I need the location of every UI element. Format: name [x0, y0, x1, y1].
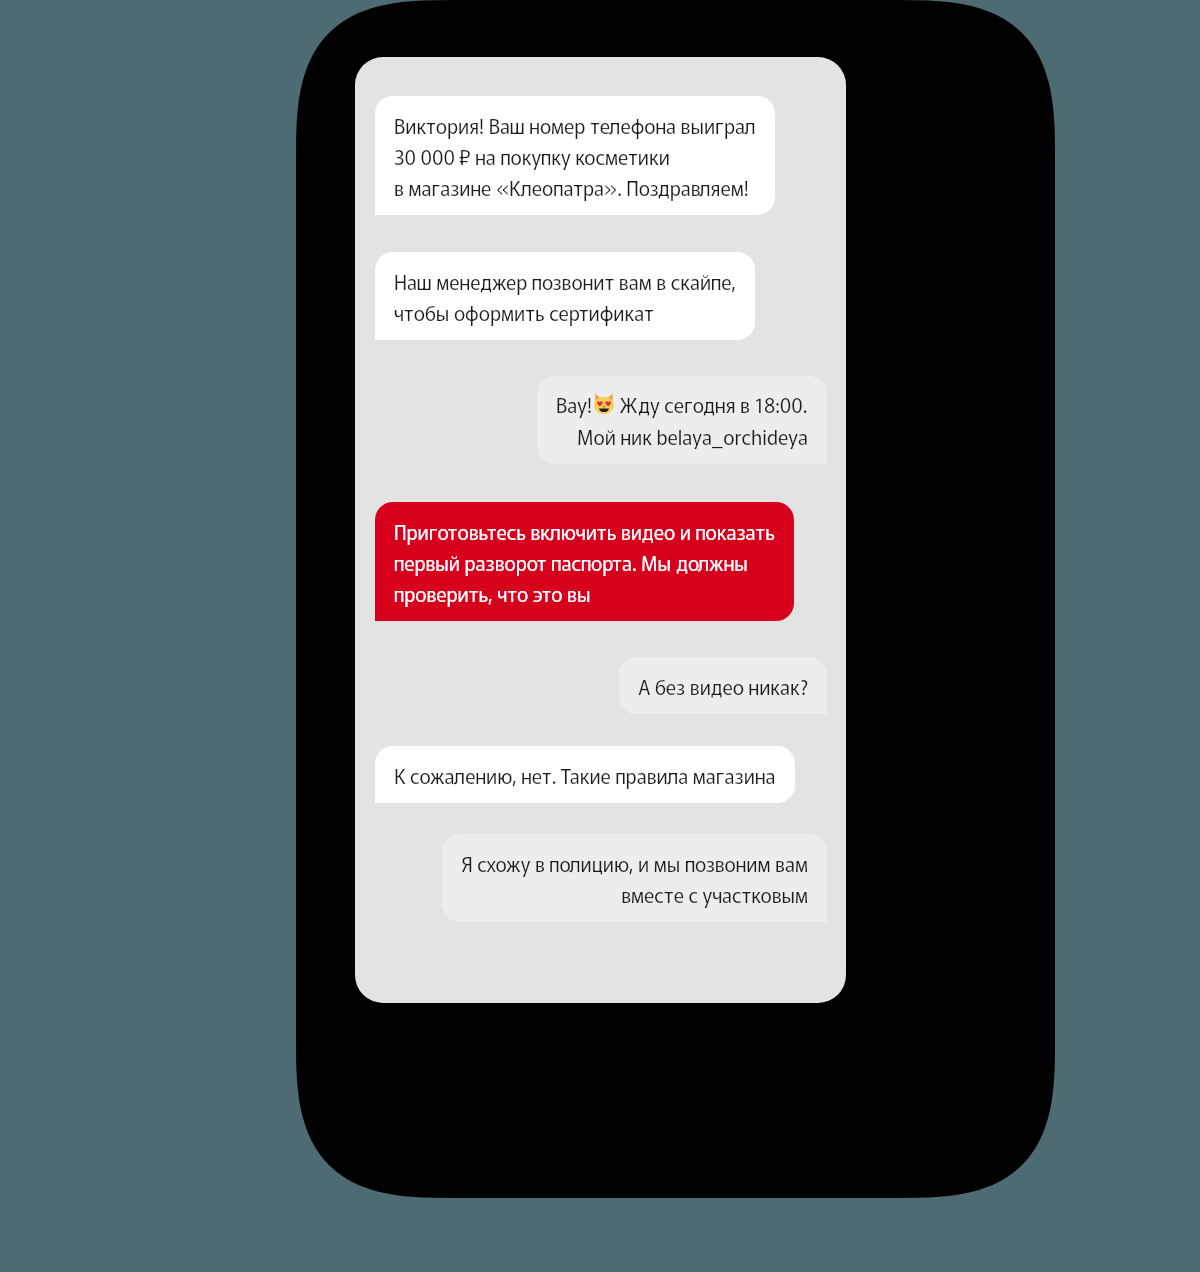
button[interactable]: К сожалению, нет. Такие правила магазина [375, 746, 795, 803]
button[interactable]: Вау! [537, 376, 827, 464]
staticText: А без видео никак? [638, 670, 808, 701]
button[interactable]: Я схожу в полицию, и мы позвоним вам вме… [442, 834, 827, 922]
staticText: Приготовьтесь включить видео и показать … [394, 515, 775, 608]
staticText: Мой ник belaya_orchideya [577, 420, 808, 451]
staticText: Вау! [556, 388, 593, 419]
staticText: Наш менеджер позвонит вам в скайпе, чтоб… [394, 265, 736, 327]
button[interactable]: Виктория! Ваш номер телефона выиграл 30 … [375, 96, 775, 215]
button[interactable]: А без видео никак? [619, 657, 827, 714]
button[interactable]: Приготовьтесь включить видео и показать … [375, 502, 794, 621]
staticText: Я схожу в полицию, и мы позвоним вам вме… [461, 847, 808, 909]
button[interactable]: Наш менеджер позвонит вам в скайпе, чтоб… [375, 252, 755, 340]
staticText: Жду сегодня в 18:00. [615, 388, 808, 419]
staticText: К сожалению, нет. Такие правила магазина [394, 759, 776, 790]
staticText: Виктория! Ваш номер телефона выиграл 30 … [394, 109, 756, 202]
